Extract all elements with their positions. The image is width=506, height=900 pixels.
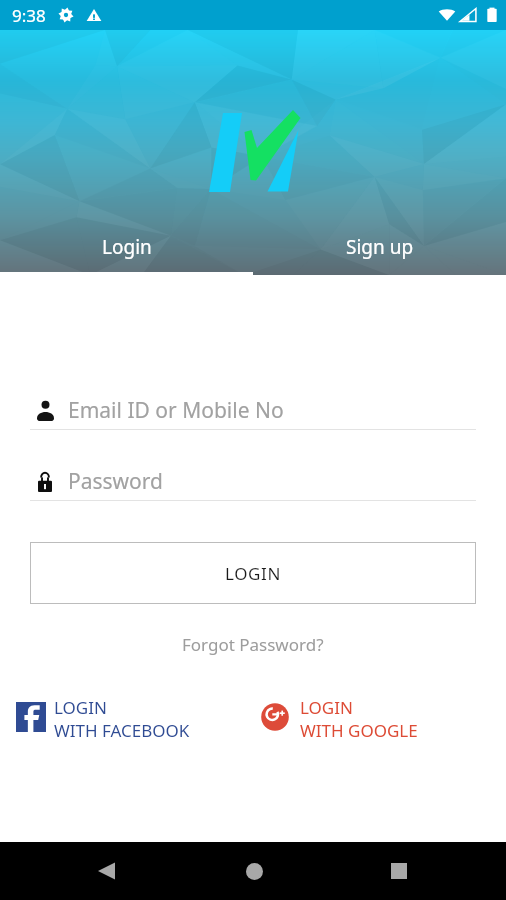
button[interactable]: Recents: [370, 842, 428, 900]
button[interactable]: Login: [0, 219, 253, 275]
staticText: LOGIN: [300, 696, 353, 719]
button[interactable]: Sign up: [253, 219, 506, 275]
button[interactable]: Back: [77, 842, 135, 900]
staticText: LOGIN: [225, 562, 281, 585]
staticText: 9:38: [12, 4, 46, 27]
staticText: Login: [102, 234, 152, 260]
button[interactable]: LOGIN: [30, 542, 476, 604]
staticText: Password: [68, 467, 163, 495]
staticText: Forgot Password?: [182, 633, 324, 656]
button[interactable]: Password: [30, 463, 476, 501]
staticText: LOGIN: [54, 696, 107, 719]
button[interactable]: Forgot Password?: [174, 630, 332, 659]
button[interactable]: Email ID or Mobile No: [30, 392, 476, 430]
button[interactable]: LOGIN: [16, 702, 190, 748]
button[interactable]: LOGIN: [260, 702, 418, 748]
staticText: Email ID or Mobile No: [68, 396, 284, 424]
staticText: WITH FACEBOOK: [54, 719, 190, 742]
button[interactable]: Home: [225, 842, 283, 900]
staticText: WITH GOOGLE: [300, 719, 418, 742]
staticText: Sign up: [346, 234, 414, 260]
